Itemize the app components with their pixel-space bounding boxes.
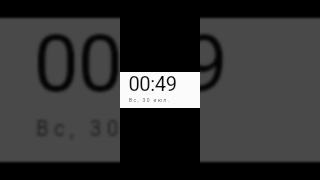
button[interactable] <box>120 0 200 180</box>
